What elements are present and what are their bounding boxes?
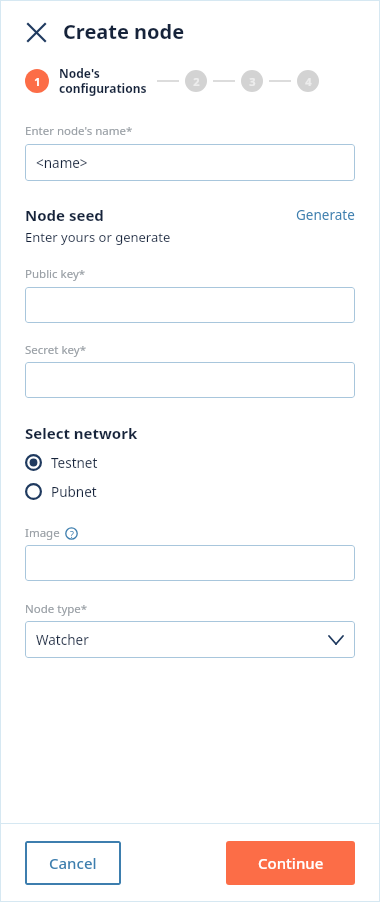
button[interactable]: Watcher	[25, 621, 355, 658]
staticText: Secret key*	[25, 342, 87, 358]
staticText: 4	[305, 74, 312, 89]
staticText: 1	[34, 74, 41, 89]
staticText: Pubnet	[51, 483, 97, 501]
button[interactable]: Testnet	[25, 449, 355, 476]
staticText: Node type*	[25, 601, 88, 617]
staticText: 2	[193, 74, 200, 89]
button[interactable]: Close	[25, 21, 47, 43]
staticText: Testnet	[51, 454, 98, 472]
staticText: Enter node's name*	[25, 123, 133, 139]
button[interactable]: <name>	[25, 144, 355, 181]
staticText: Enter yours or generate	[25, 228, 171, 246]
button[interactable]	[25, 287, 355, 323]
staticText: Public key*	[25, 266, 86, 282]
staticText: Generate	[296, 206, 355, 224]
staticText: ?	[70, 528, 74, 540]
staticText: Image	[25, 525, 60, 541]
staticText: Create node	[63, 18, 185, 45]
staticText: <name>	[36, 154, 88, 172]
button[interactable]: 4	[297, 70, 319, 92]
button[interactable]: 3	[241, 70, 263, 92]
button[interactable]: Cancel	[25, 841, 121, 885]
button[interactable]: 1	[25, 69, 49, 93]
staticText: Node's configurations	[59, 65, 147, 96]
button[interactable]: Generate	[296, 206, 355, 224]
button[interactable]	[25, 545, 355, 581]
button[interactable]: Pubnet	[25, 478, 355, 505]
staticText: Continue	[258, 853, 324, 873]
staticText: 3	[249, 74, 256, 89]
button[interactable]	[25, 362, 355, 398]
button[interactable]: Continue	[226, 841, 355, 885]
staticText: Node seed	[25, 205, 104, 225]
staticText: Watcher	[36, 631, 89, 649]
button[interactable]: 2	[185, 70, 207, 92]
button[interactable]: Image help	[65, 527, 78, 540]
staticText: Cancel	[49, 853, 97, 873]
staticText: Select network	[25, 423, 138, 443]
